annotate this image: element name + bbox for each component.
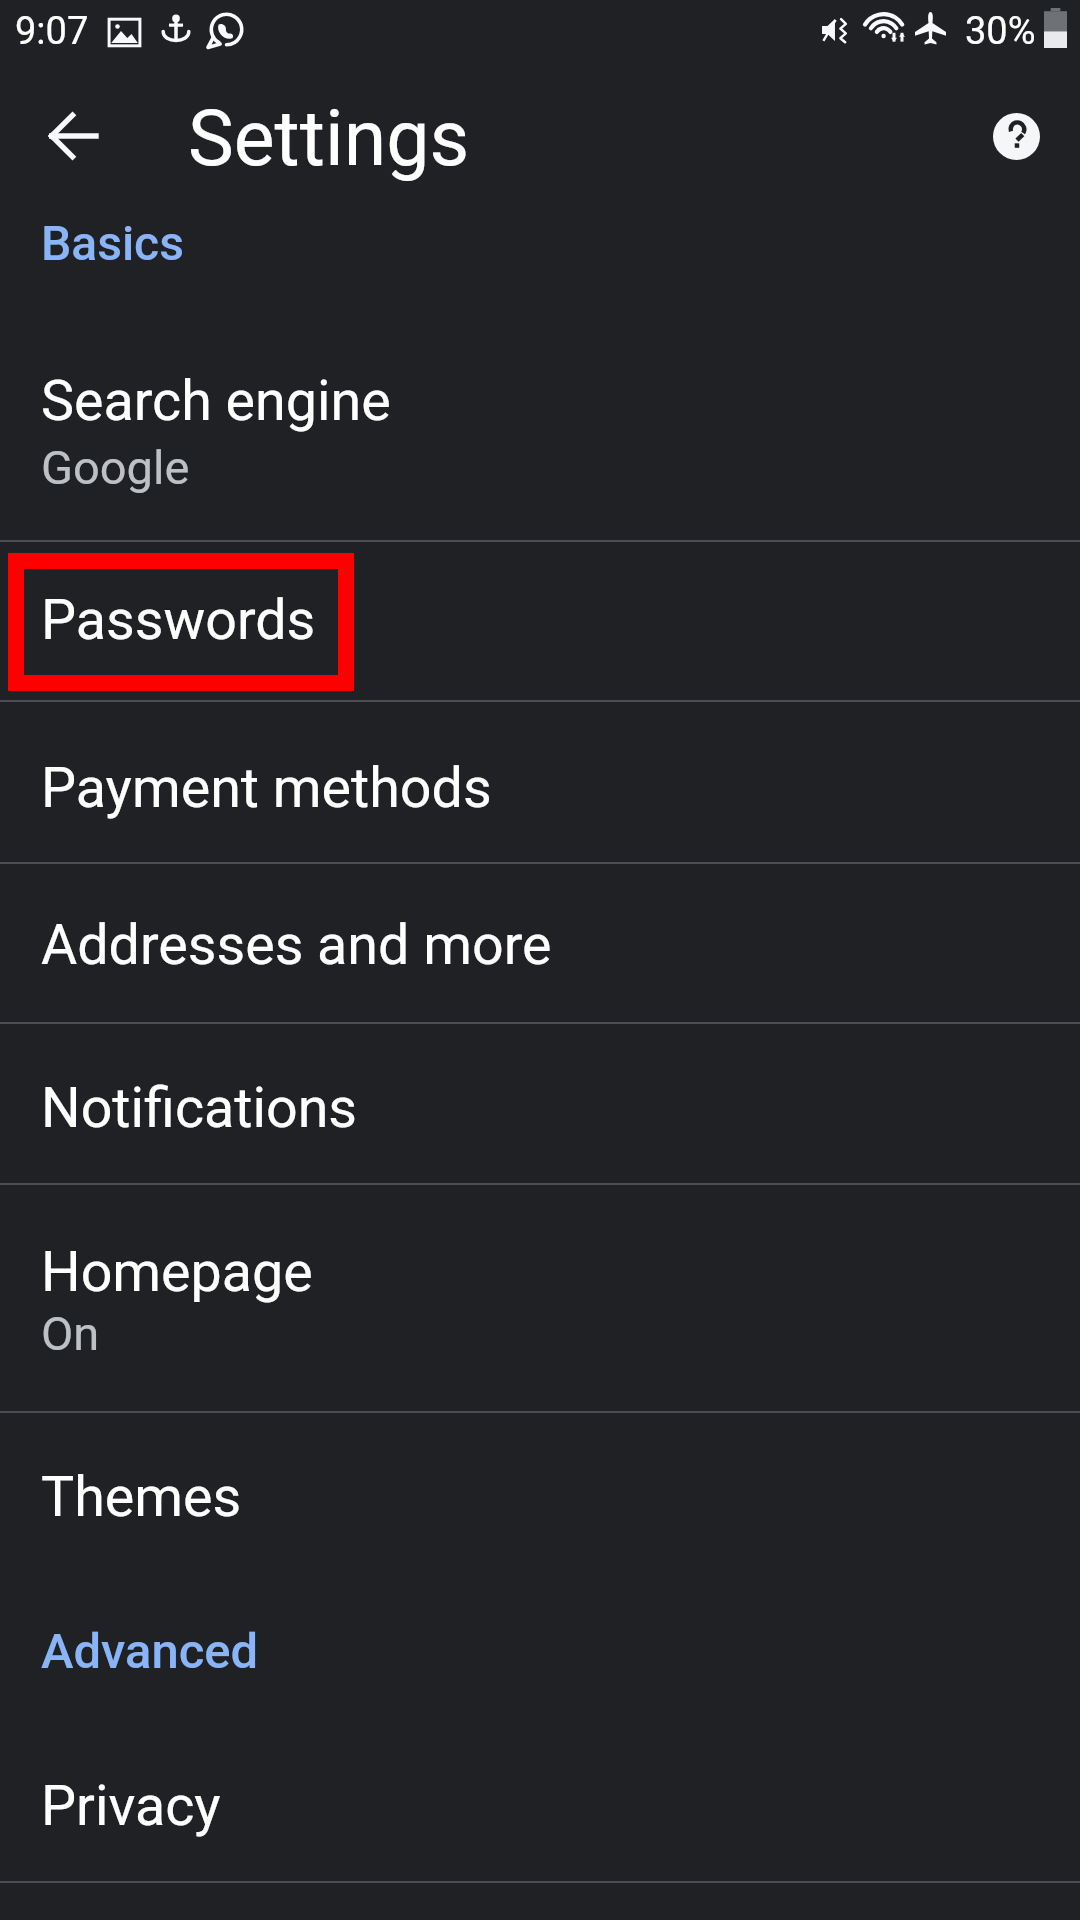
button[interactable]: Navigate up	[27, 91, 117, 181]
staticText: Search engine	[41, 368, 391, 433]
staticText: Notifications	[41, 1075, 358, 1140]
button[interactable]: Search engine	[0, 356, 1080, 540]
staticText: Google	[41, 440, 190, 495]
staticText: Settings	[188, 94, 470, 184]
staticText: Basics	[41, 215, 184, 271]
staticText: Privacy	[41, 1773, 221, 1838]
staticText: On	[41, 1306, 100, 1361]
button[interactable]: Privacy	[0, 1722, 1080, 1882]
button[interactable]: Help and feedback	[977, 97, 1055, 175]
button[interactable]: Themes	[0, 1413, 1080, 1573]
staticText: Advanced	[41, 1623, 259, 1680]
staticText: Addresses and more	[41, 912, 552, 977]
staticText: 30%	[965, 9, 1036, 54]
button[interactable]: Passwords	[0, 542, 1080, 700]
button[interactable]: Homepage	[0, 1185, 1080, 1411]
staticText: Payment methods	[41, 755, 492, 820]
button[interactable]: Addresses and more	[0, 864, 1080, 1022]
staticText: Passwords	[41, 587, 316, 652]
staticText: 9:07	[15, 9, 89, 54]
staticText: Themes	[41, 1464, 242, 1529]
button[interactable]: Payment methods	[0, 702, 1080, 862]
button[interactable]: Notifications	[0, 1024, 1080, 1183]
staticText: Homepage	[41, 1239, 313, 1304]
